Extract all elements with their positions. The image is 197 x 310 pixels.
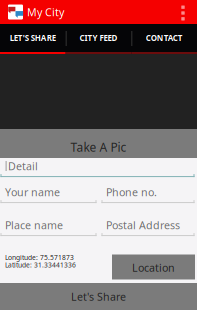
button[interactable]: Let's Share [0,283,197,310]
staticText: Detail [8,159,38,173]
staticText: Postal Address [106,218,180,232]
staticText: Take A Pic [70,139,126,155]
staticText: CONTACT [146,33,183,43]
button[interactable]: Take A Pic [0,129,197,158]
button[interactable]: Place name [0,218,97,236]
button[interactable]: Location [112,254,195,279]
staticText: Phone no. [106,185,157,199]
staticText: Location [132,260,175,275]
staticText: My City [27,5,64,19]
button[interactable]: Phone no. [101,185,195,203]
button[interactable]: CITY FEED [66,24,131,54]
button[interactable]: CONTACT [131,24,197,54]
button[interactable]: Detail [0,159,195,177]
staticText: Place name [5,218,63,232]
button[interactable]: Postal Address [101,218,195,236]
button[interactable]: LET'S SHARE [0,24,66,54]
staticText: CITY FEED [79,33,117,43]
staticText: Your name [5,185,60,199]
staticText: Longitude: 75.571873 [5,253,74,262]
button[interactable]: Your name [0,185,97,203]
button[interactable]: More options [169,0,197,24]
staticText: Let's Share [71,289,126,304]
staticText: Latitude: 31.33441336 [5,260,76,269]
staticText: LET'S SHARE [10,33,56,43]
